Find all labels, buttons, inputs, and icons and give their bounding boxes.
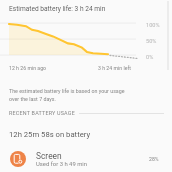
staticText: 50% [146, 38, 157, 45]
staticText: 12h 25m 58s on battery [9, 130, 91, 139]
staticText: Used for 3 h 49 min [36, 161, 88, 168]
staticText: 3 h 24 min left [98, 65, 131, 71]
staticText: 28% [149, 156, 159, 162]
staticText: The estimated battery life is based on y… [9, 88, 125, 102]
staticText: 12 h 26 min ago [9, 65, 47, 71]
staticText: 0% [146, 54, 154, 61]
button[interactable]: Screen [0, 146, 172, 172]
staticText: Estimated battery life: 3 h 24 min [9, 5, 106, 13]
staticText: Screen [36, 151, 62, 161]
staticText: 100% [146, 22, 160, 29]
staticText: RECENT BATTERY USAGE [9, 110, 75, 116]
